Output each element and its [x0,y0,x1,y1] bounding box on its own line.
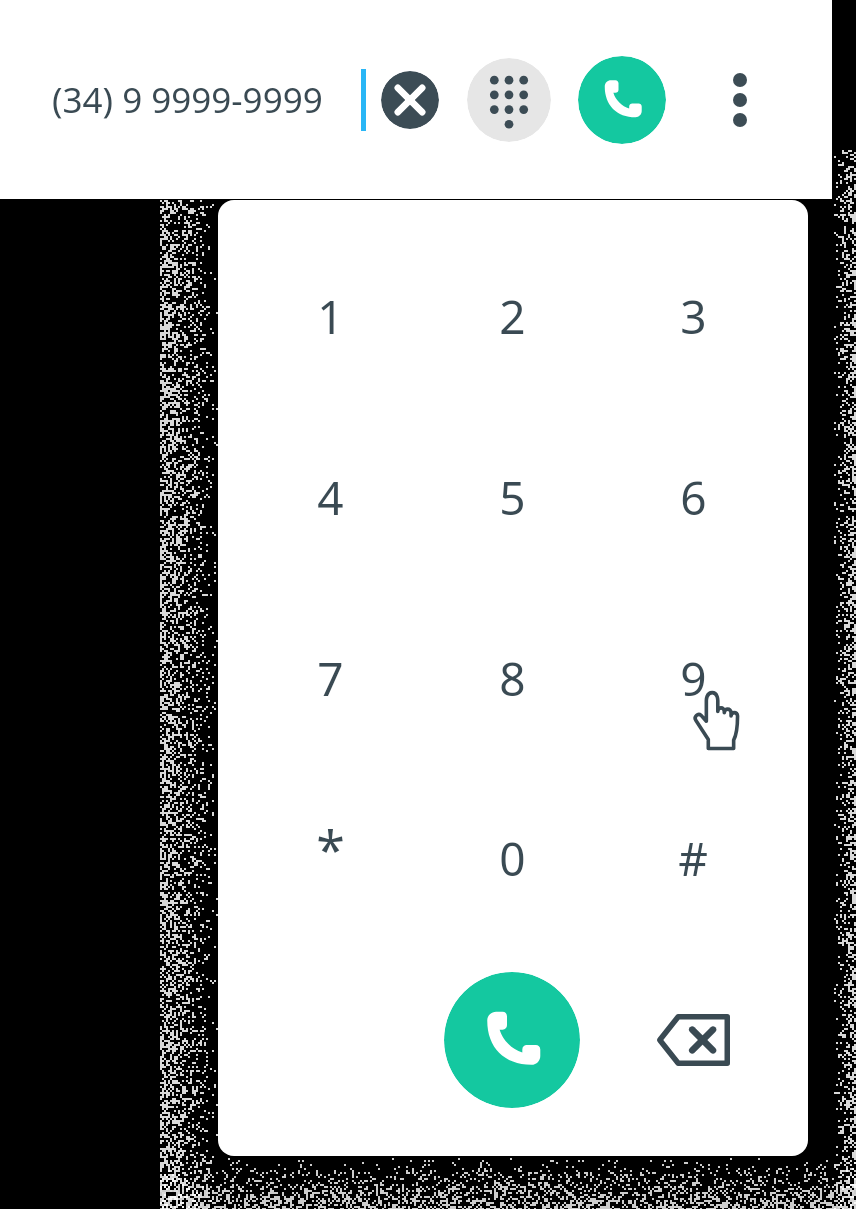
button[interactable]: 5 [452,447,572,547]
staticText: 5 [499,466,526,529]
staticText: * [316,813,345,884]
button[interactable]: 2 [452,266,572,366]
staticText: 6 [680,466,707,529]
button[interactable]: * [270,808,390,908]
button[interactable]: 3 [633,266,753,366]
button[interactable]: More options [705,65,775,135]
button[interactable]: 0 [452,808,572,908]
staticText: 7 [317,647,344,710]
button[interactable]: Call [444,972,580,1108]
staticText: 8 [499,647,526,710]
staticText: # [678,827,708,890]
button[interactable]: 7 [270,628,390,728]
staticText: 4 [317,466,344,529]
staticText: 1 [317,285,344,348]
button[interactable]: Backspace [638,995,748,1085]
staticText: 3 [680,285,707,348]
button[interactable]: 1 [270,266,390,366]
staticText: 2 [499,285,526,348]
button[interactable]: 4 [270,447,390,547]
button[interactable]: 8 [452,628,572,728]
button[interactable]: Clear [381,71,439,129]
staticText: 9 [680,647,707,710]
button[interactable]: 9 [633,628,753,728]
button[interactable]: Dialpad [467,58,551,142]
staticText: 0 [499,827,526,890]
button[interactable]: 6 [633,447,753,547]
button[interactable]: Call [578,56,666,144]
button[interactable]: # [633,808,753,908]
staticText: (34) 9 9999-9999 [52,76,323,124]
